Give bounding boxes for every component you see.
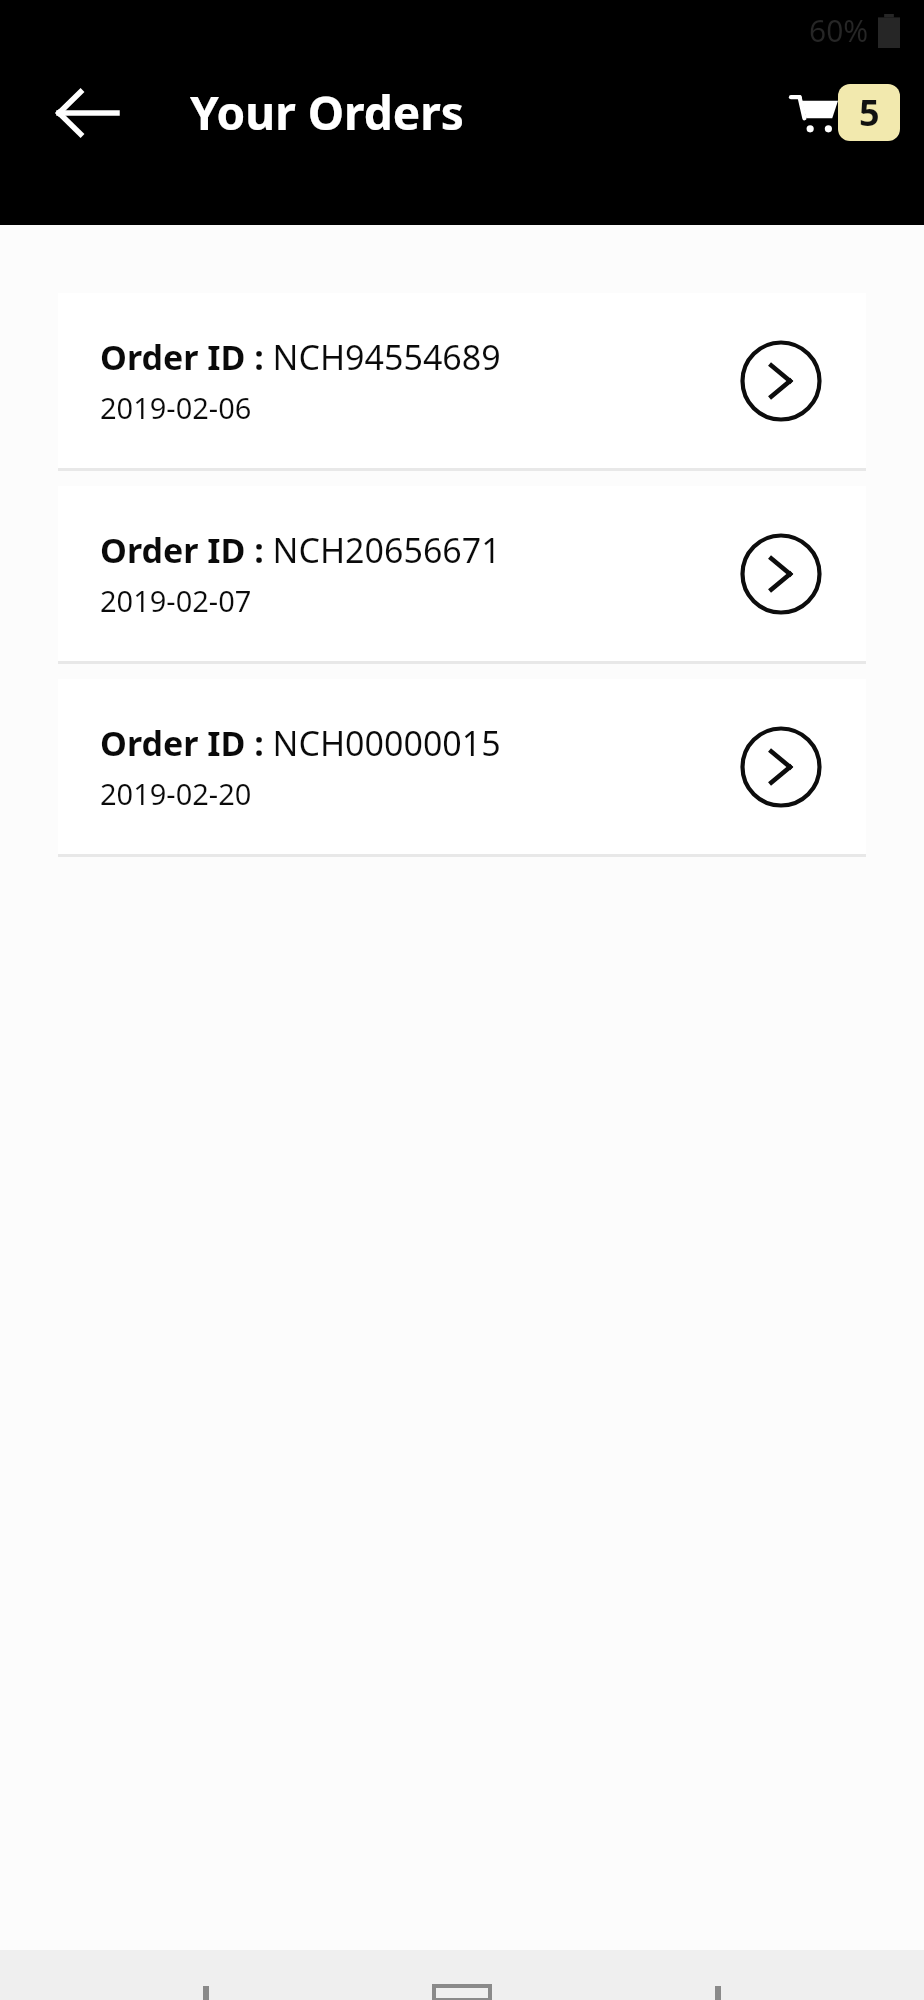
button[interactable]: Home	[412, 1978, 512, 2000]
button[interactable]: Order ID : NCH20656671	[58, 486, 866, 661]
staticText: 60%	[809, 10, 869, 51]
staticText: Order ID : NCH94554689	[100, 334, 501, 380]
button[interactable]: Back	[40, 65, 136, 161]
staticText: Order ID : NCH20656671	[100, 527, 501, 573]
button[interactable]: Open order NCH20656671	[738, 531, 824, 617]
staticText: 2019-02-07	[100, 581, 252, 620]
button[interactable]: Open order NCH94554689	[738, 338, 824, 424]
staticText: Order ID : NCH00000015	[100, 720, 501, 766]
staticText: Your Orders	[190, 81, 464, 144]
button[interactable]: Order ID : NCH00000015	[58, 679, 866, 854]
button[interactable]: Recents	[668, 1978, 768, 2000]
button[interactable]: Order ID : NCH94554689	[58, 293, 866, 468]
button[interactable]: Back	[156, 1978, 256, 2000]
staticText: 5	[859, 88, 880, 137]
button[interactable]: Open order NCH00000015	[738, 724, 824, 810]
staticText: 2019-02-06	[100, 388, 252, 427]
button[interactable]: Cart, 5 items	[790, 84, 900, 141]
staticText: 2019-02-20	[100, 774, 252, 813]
